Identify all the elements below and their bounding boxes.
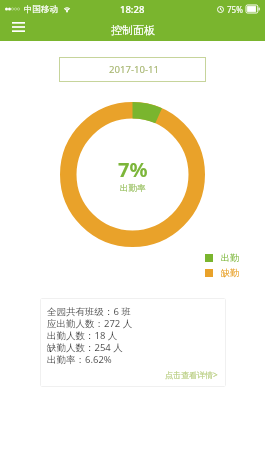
staticText: 75% bbox=[227, 4, 243, 15]
staticText: 缺勤人数：254 人 bbox=[47, 342, 123, 353]
button[interactable]: 2017-10-11 bbox=[59, 57, 206, 82]
staticText: 2017-10-11 bbox=[109, 63, 160, 76]
staticText: 出勤人数：18 人 bbox=[47, 330, 118, 341]
staticText: 出勤 bbox=[221, 252, 239, 263]
staticText: 18:28 bbox=[120, 3, 145, 16]
staticText: 点击查看详情> bbox=[165, 369, 218, 380]
staticText: 7% bbox=[118, 156, 148, 183]
staticText: 应出勤人数：272 人 bbox=[47, 318, 133, 329]
staticText: 出勤率 bbox=[120, 183, 146, 194]
button[interactable]: 全园共有班级：6 班 bbox=[40, 298, 226, 387]
staticText: 出勤率：6.62% bbox=[47, 354, 112, 365]
staticText: 全园共有班级：6 班 bbox=[47, 306, 131, 317]
staticText: 中国移动 bbox=[24, 4, 58, 15]
staticText: 缺勤 bbox=[221, 267, 239, 278]
button[interactable]: Menu bbox=[7, 16, 29, 38]
staticText: 控制面板 bbox=[111, 23, 155, 37]
button[interactable]: 点击查看详情> bbox=[161, 365, 222, 384]
